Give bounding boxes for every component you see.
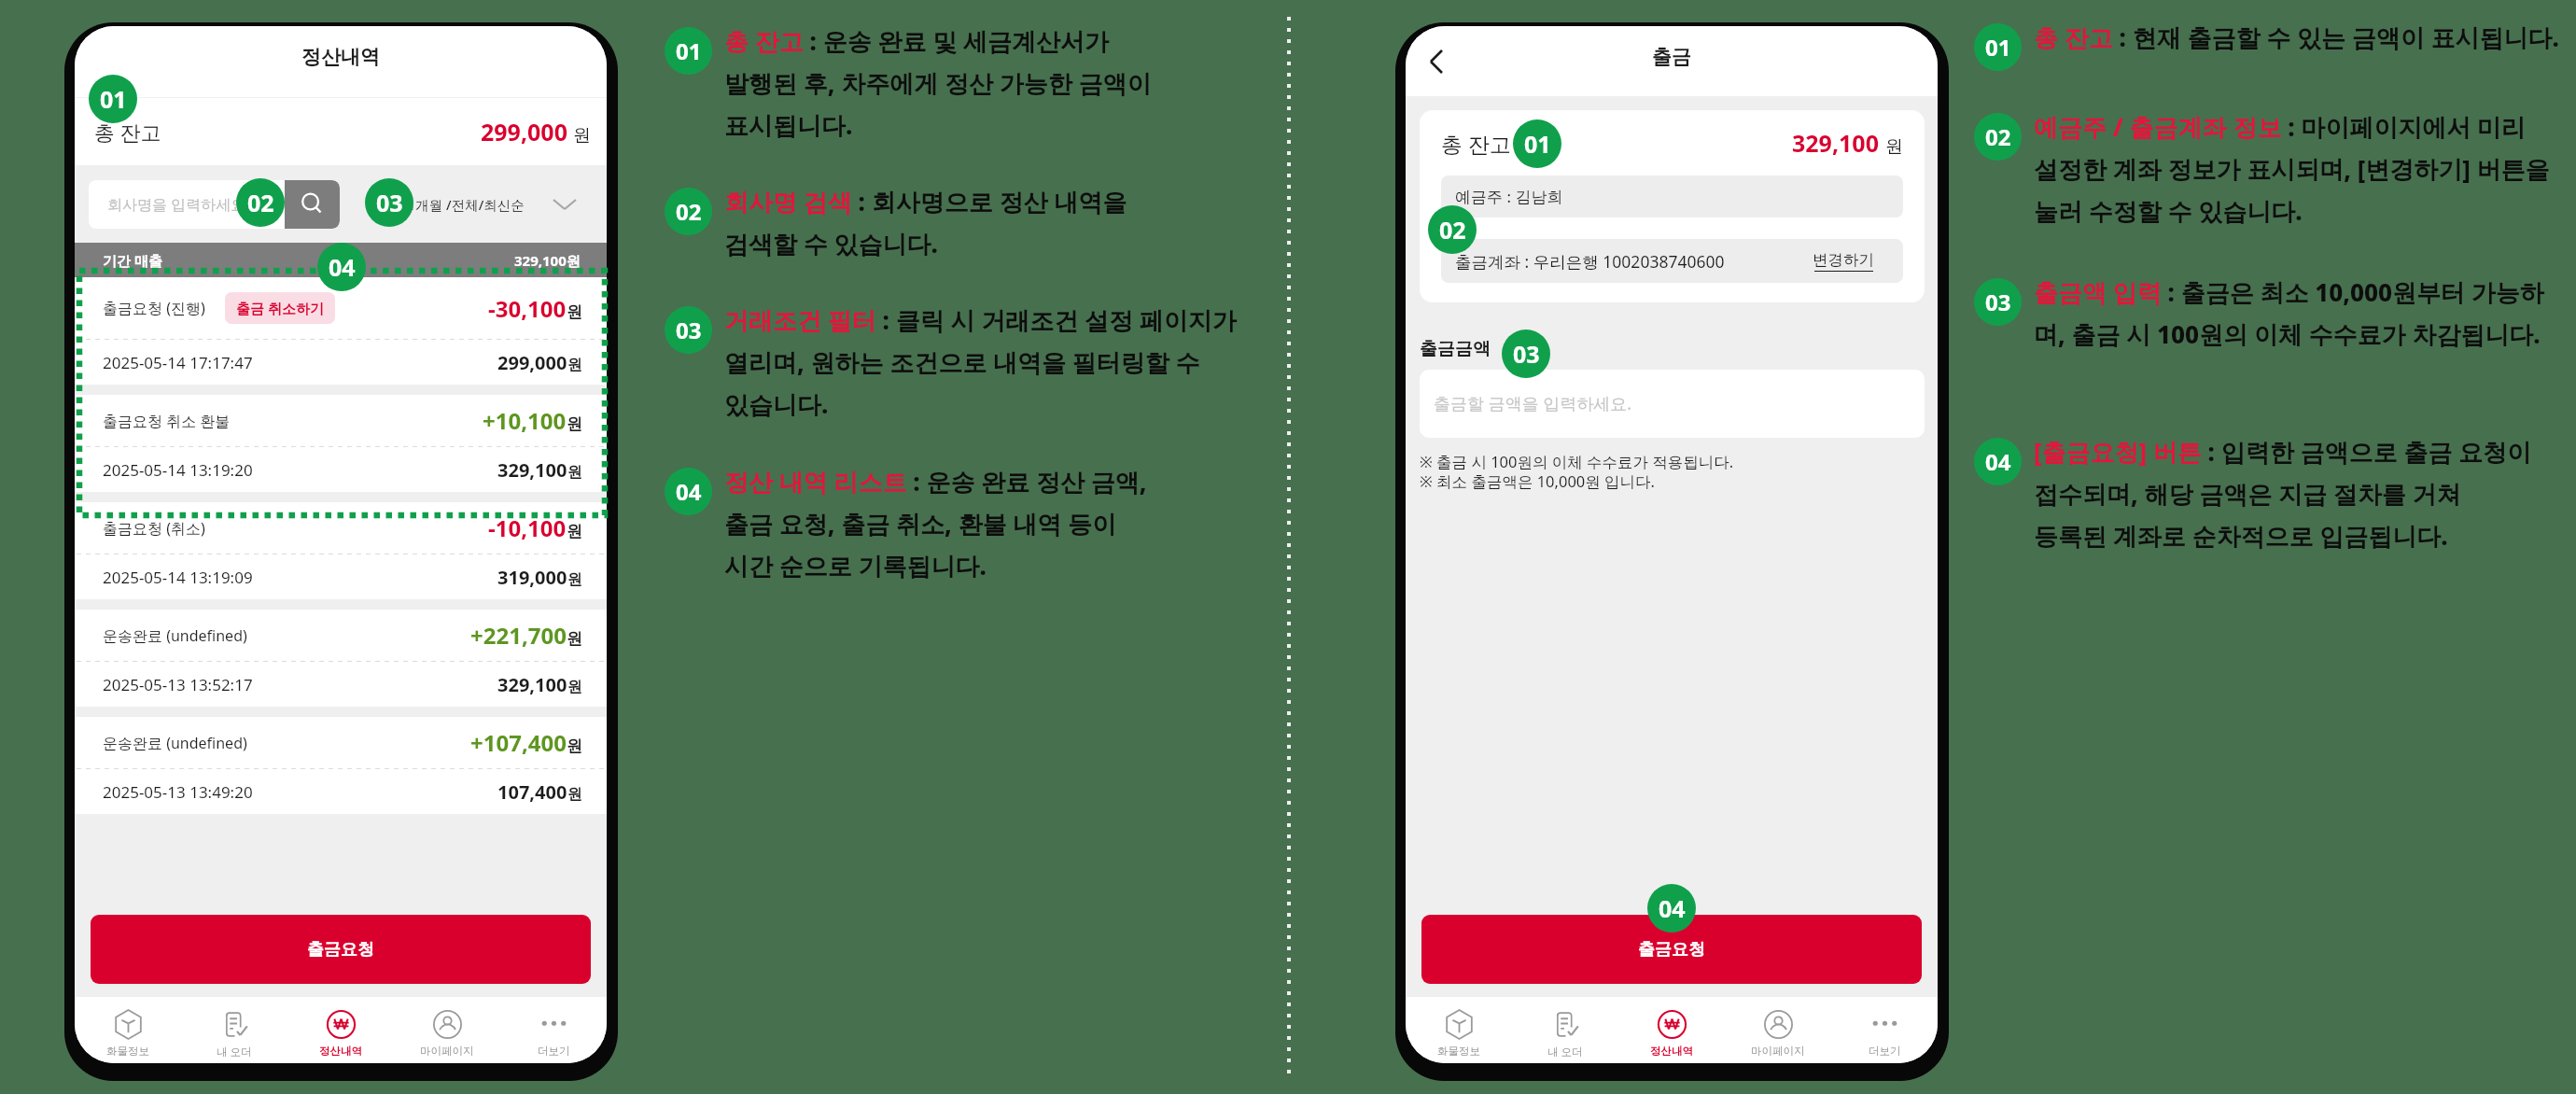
staticText: 02 [1439,214,1466,245]
button[interactable]: 마이페이지 [394,997,500,1063]
staticText: 01 [1524,128,1551,160]
staticText: 01 [1985,32,2011,63]
staticText: 03 [676,315,702,345]
button[interactable]: 2025-05-14 13:19:20 [75,447,607,492]
button[interactable]: 총 잔고 [75,98,607,165]
staticText: 329,100원 [514,251,581,270]
staticText: 04 [676,476,702,507]
button[interactable]: 출금요청 (진행) [75,277,607,339]
staticText: 정산내역 [319,1045,362,1058]
staticText: 예금주 / 출금계좌 정보 : 마이페이지에서 미리 설정한 계좌 정보가 표시… [2034,110,2550,227]
button[interactable]: 더보기 [1831,997,1938,1063]
button[interactable]: Search [285,180,340,229]
button[interactable]: 2025-05-13 13:49:20 [75,769,607,814]
staticText: 출금요청 (진행) [103,298,205,318]
staticText: 정산내역 [301,45,380,69]
staticText: 2025-05-13 13:49:20 [103,781,253,803]
staticText: 원 [567,356,582,374]
staticText: 출금 [1652,45,1691,69]
staticText: 04 [329,251,356,283]
staticText: 출금요청 (취소) [103,518,205,539]
staticText: [출금요청] 버튼 : 입력한 금액으로 출금 요청이 접수되며, 해당 금액은… [2034,435,2532,552]
staticText: +10,100 [483,405,567,436]
staticText: 원 [567,736,582,756]
staticText: 01 [100,83,127,115]
staticText: 02 [676,196,702,227]
button[interactable]: 화물정보 [1406,997,1512,1063]
staticText: 총 잔고 : 현재 출금할 수 있는 금액이 표시됩니다. [2034,21,2559,54]
staticText: 원 [567,678,582,696]
staticText: 299,000 [497,350,567,375]
button[interactable]: 운송완료 (undefined) [75,717,607,768]
staticText: 03 [1513,338,1540,370]
button[interactable]: Back [1413,37,1462,86]
button[interactable]: 내 오더 [1512,997,1618,1063]
button[interactable]: 마이페이지 [1725,997,1831,1063]
staticText: 원 [567,570,582,589]
staticText: 107,400 [497,779,567,805]
staticText: 예금주 : 김남희 [1455,186,1563,207]
staticText: 정산 내역 리스트 : 운송 완료 정산 금액, 출금 요청, 출금 취소, 환… [724,465,1147,582]
button[interactable]: 더보기 [500,997,607,1063]
staticText: 원 [573,124,591,147]
staticText: 319,000 [497,565,567,590]
button[interactable]: 정산내역 [1618,997,1725,1063]
staticText: 거래조건 필터 : 클릭 시 거래조건 설정 페이지가 열리며, 원하는 조건으… [724,303,1237,420]
staticText: 출금요청 [307,939,374,961]
button[interactable]: 화물정보 [75,997,181,1063]
staticText: 출금 취소하기 [236,299,324,317]
staticText: 원 [1885,135,1903,158]
staticText: 출금액 입력 : 출금은 최소 10,000원부터 가능하 며, 출금 시 10… [2034,275,2544,350]
button[interactable]: 회사명을 입력하세요 [89,180,340,229]
staticText: 정산내역 [1650,1045,1693,1058]
staticText: 329,100 [497,457,567,483]
staticText: -10,100 [488,512,567,543]
staticText: 원 [567,629,582,649]
button[interactable]: 2025-05-14 13:19:09 [75,554,607,599]
staticText: 운송완료 (undefined) [103,625,247,646]
button[interactable]: 변경하기 [1813,250,1874,272]
staticText: 329,100 [497,672,567,697]
staticText: -30,100 [488,293,567,324]
staticText: 2025-05-14 13:19:20 [103,459,253,481]
button[interactable]: 내 오더 [181,997,287,1063]
staticText: 마이페이지 [1751,1045,1805,1058]
staticText: 화물정보 [1437,1045,1480,1058]
staticText: ※ 출금 시 100원의 이체 수수료가 적용됩니다. ※ 최소 출금액은 10… [1420,451,1734,492]
staticText: 내 오더 [1547,1045,1583,1059]
staticText: 변경하기 [1813,250,1874,270]
staticText: 회사명을 입력하세요 [107,194,285,215]
staticText: 더보기 [1869,1045,1901,1058]
button[interactable]: 출금요청 [1421,915,1922,984]
button[interactable]: 출금요청 취소 환불 [75,395,607,446]
staticText: 1개월 /전체/최신순 [408,195,525,214]
button[interactable]: 운송완료 (undefined) [75,610,607,661]
staticText: 마이페이지 [420,1045,474,1058]
staticText: 02 [1985,121,2011,152]
button[interactable]: 2025-05-14 17:17:47 [75,340,607,385]
staticText: +221,700 [470,620,567,651]
button[interactable]: 출금요청 [91,915,591,984]
staticText: 03 [1985,287,2011,317]
button[interactable]: 1개월 /전체/최신순 [377,192,594,217]
staticText: 04 [1659,892,1686,924]
staticText: 원 [567,302,582,322]
staticText: 더보기 [538,1045,570,1058]
staticText: 출금요청 [1638,939,1705,961]
staticText: 329,100 [1792,127,1879,159]
button[interactable]: 정산내역 [287,997,394,1063]
staticText: 내 오더 [217,1045,252,1059]
button[interactable]: 출금할 금액을 입력하세요. [1420,370,1925,438]
button[interactable]: 2025-05-13 13:52:17 [75,662,607,707]
staticText: 출금할 금액을 입력하세요. [1434,392,1632,415]
button[interactable]: 출금 취소하기 [225,292,335,324]
staticText: 출금금액 [1420,338,1491,360]
staticText: 총 잔고 [94,118,161,146]
staticText: 출금요청 취소 환불 [103,411,231,431]
button[interactable]: 출금요청 (취소) [75,502,607,554]
staticText: 03 [376,187,403,218]
staticText: 총 잔고 [1441,129,1511,158]
staticText: 01 [676,35,702,66]
staticText: 2025-05-14 13:19:09 [103,567,253,588]
staticText: 화물정보 [106,1045,149,1058]
